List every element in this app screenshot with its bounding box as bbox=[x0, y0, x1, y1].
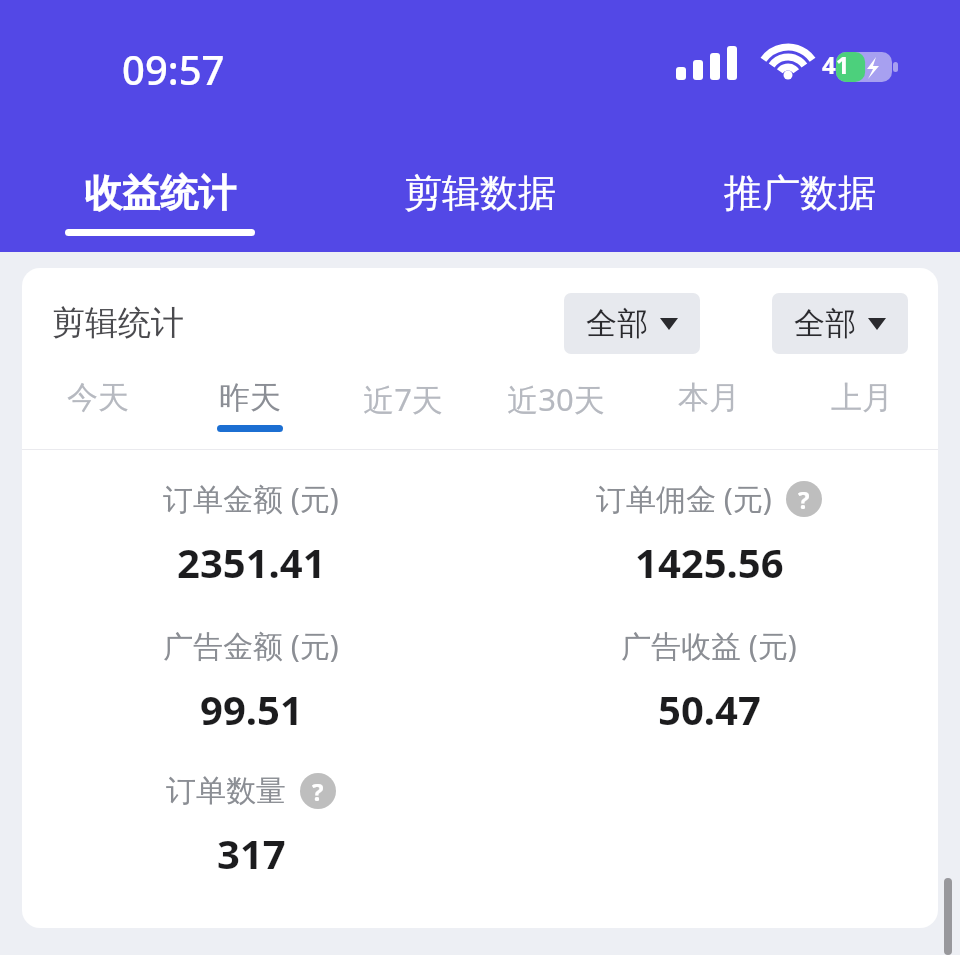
staticText: ? bbox=[798, 483, 810, 516]
staticText: 1425.56 bbox=[635, 535, 784, 589]
button[interactable]: 订单金额 (元) bbox=[22, 478, 480, 589]
staticText: 99.51 bbox=[200, 682, 303, 736]
button[interactable]: 订单佣金 (元) bbox=[480, 478, 938, 589]
staticText: 今天 bbox=[67, 378, 129, 417]
other: Help bbox=[786, 481, 822, 517]
staticText: 昨天 bbox=[219, 378, 281, 417]
staticText: 2351.41 bbox=[177, 535, 326, 589]
staticText: 上月 bbox=[831, 378, 893, 417]
staticText: 广告金额 (元) bbox=[163, 625, 339, 666]
button[interactable]: 订单数量 bbox=[22, 772, 480, 880]
staticText: 09:57 bbox=[122, 42, 225, 96]
staticText: 50.47 bbox=[658, 682, 761, 736]
staticText: 剪辑统计 bbox=[52, 302, 184, 344]
button[interactable]: 上月 bbox=[785, 378, 938, 432]
other: Help bbox=[300, 773, 336, 809]
staticText: 订单数量 bbox=[166, 772, 286, 810]
button[interactable]: 今天 bbox=[22, 378, 174, 432]
staticText: 剪辑数据 bbox=[404, 169, 556, 217]
button[interactable]: 广告收益 (元) bbox=[480, 625, 938, 736]
staticText: 41 bbox=[822, 48, 850, 81]
staticText: 广告收益 (元) bbox=[621, 625, 797, 666]
staticText: ? bbox=[312, 775, 324, 808]
button[interactable]: 收益统计 bbox=[0, 165, 320, 240]
button[interactable]: 近7天 bbox=[326, 378, 479, 435]
staticText: 近7天 bbox=[363, 378, 443, 420]
button[interactable]: 本月 bbox=[632, 378, 785, 432]
staticText: 订单佣金 (元) bbox=[596, 478, 772, 519]
staticText: 推广数据 bbox=[724, 169, 876, 217]
button[interactable]: 剪辑数据 bbox=[320, 165, 640, 240]
staticText: 近30天 bbox=[507, 378, 605, 420]
button[interactable]: 全部 bbox=[772, 293, 908, 354]
button[interactable]: 全部 bbox=[564, 293, 700, 354]
button[interactable]: 近30天 bbox=[479, 378, 632, 435]
staticText: 订单金额 (元) bbox=[163, 478, 339, 519]
staticText: 全部 bbox=[794, 304, 856, 343]
staticText: 全部 bbox=[586, 304, 648, 343]
button[interactable]: 推广数据 bbox=[640, 165, 960, 240]
button[interactable]: 昨天 bbox=[174, 378, 326, 432]
staticText: 317 bbox=[217, 826, 286, 880]
button[interactable]: 广告金额 (元) bbox=[22, 625, 480, 736]
staticText: 收益统计 bbox=[84, 169, 236, 217]
staticText: 本月 bbox=[678, 378, 740, 417]
